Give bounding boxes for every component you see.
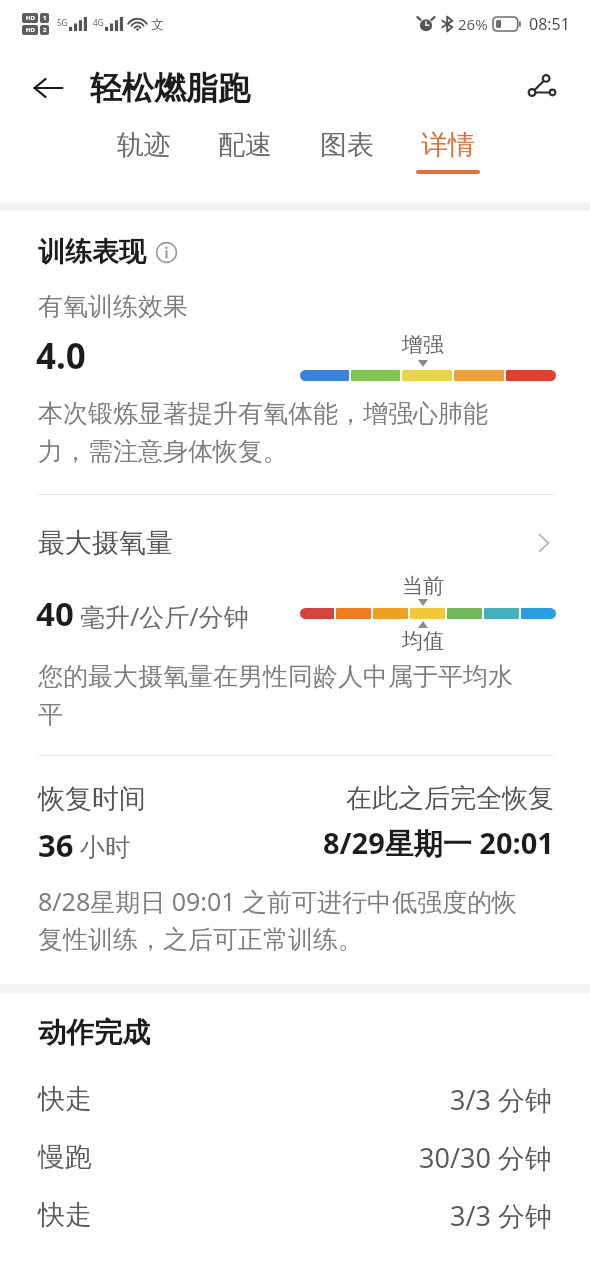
button[interactable]: 图表 [313,128,381,174]
staticText: 详情 [421,128,475,162]
staticText: 慢跑 [38,1140,92,1174]
staticText: 快走 [38,1198,92,1232]
staticText: 2 [43,26,47,34]
staticText: HD [26,26,35,34]
button[interactable]: 最大摄氧量 [0,523,590,563]
staticText: 在此之后完全恢复 [346,782,554,815]
button[interactable]: Information [155,241,178,264]
staticText: 增强 [402,332,444,358]
staticText: 轨迹 [117,128,171,162]
staticText: 3/3 分钟 [450,1197,552,1234]
staticText: 动作完成 [38,1015,150,1050]
button[interactable]: 快走 [0,1186,590,1244]
staticText: 当前 [402,573,444,599]
staticText: 快走 [38,1082,92,1116]
staticText: 本次锻炼显著提升有氧体能，增强心肺能 力，需注意身体恢复。 [38,398,488,468]
staticText: 文 [151,16,164,32]
staticText: 小时 [80,832,130,863]
staticText: HD [26,14,35,22]
staticText: 轻松燃脂跑 [90,68,250,108]
staticText: 图表 [320,128,374,162]
button[interactable]: Share [516,63,566,113]
staticText: 8/29星期一 20:01 [323,823,554,863]
staticText: 4G [93,17,104,28]
staticText: 恢复时间 [38,782,146,816]
staticText: 8/28星期日 09:01 之前可进行中低强度的恢 复性训练，之后可正常训练。 [38,884,518,956]
staticText: 3/3 分钟 [450,1081,552,1118]
other: Open VO2 max details [530,530,556,556]
staticText: 有氧训练效果 [38,291,188,322]
staticText: 您的最大摄氧量在男性同龄人中属于平均水 平 [38,661,513,731]
staticText: 训练表现 [38,235,146,269]
staticText: 均值 [402,628,444,654]
staticText: 4.0 [36,332,86,380]
staticText: 30/30 分钟 [419,1139,552,1176]
button[interactable]: 详情 [414,128,482,174]
staticText: 1 [43,14,47,22]
staticText: 最大摄氧量 [38,526,173,560]
staticText: 40 [36,591,74,636]
staticText: 毫升/公斤/分钟 [80,599,249,633]
staticText: 36 [38,824,74,866]
staticText: 08:51 [529,13,570,35]
button[interactable]: 配速 [211,128,279,174]
staticText: 26% [458,14,488,34]
button[interactable]: 快走 [0,1070,590,1128]
staticText: 配速 [218,128,272,162]
staticText: 5G [57,17,68,28]
button[interactable]: 慢跑 [0,1128,590,1186]
button[interactable]: Back [24,64,72,112]
button[interactable]: 轨迹 [110,128,178,174]
